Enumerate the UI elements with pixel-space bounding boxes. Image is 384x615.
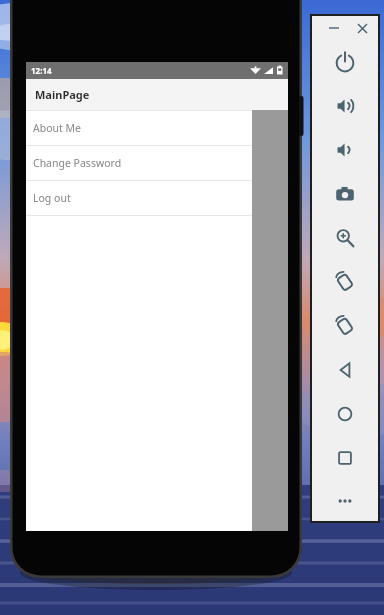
button[interactable]: Home xyxy=(312,392,378,436)
staticText: Log out xyxy=(33,191,71,205)
button[interactable]: Zoom xyxy=(312,216,378,260)
button[interactable]: Log out xyxy=(26,181,288,215)
button[interactable]: Rotate right xyxy=(312,304,378,348)
button[interactable]: Minimize xyxy=(326,20,342,36)
button[interactable]: More xyxy=(312,480,378,521)
button[interactable]: Change Password xyxy=(26,146,288,180)
button[interactable]: Screenshot xyxy=(312,172,378,216)
button[interactable]: Volume down xyxy=(312,128,378,172)
button[interactable]: Overview xyxy=(312,436,378,480)
button[interactable]: Power xyxy=(312,40,378,84)
staticText: MainPage xyxy=(35,87,90,102)
button[interactable]: Rotate left xyxy=(312,260,378,304)
button[interactable]: About Me xyxy=(26,111,288,145)
staticText: 12:14 xyxy=(31,65,52,76)
button[interactable]: Volume up xyxy=(312,84,378,128)
staticText: Change Password xyxy=(33,156,122,170)
staticText: About Me xyxy=(33,121,81,135)
button[interactable]: Back xyxy=(312,348,378,392)
button[interactable]: Close xyxy=(354,20,370,36)
